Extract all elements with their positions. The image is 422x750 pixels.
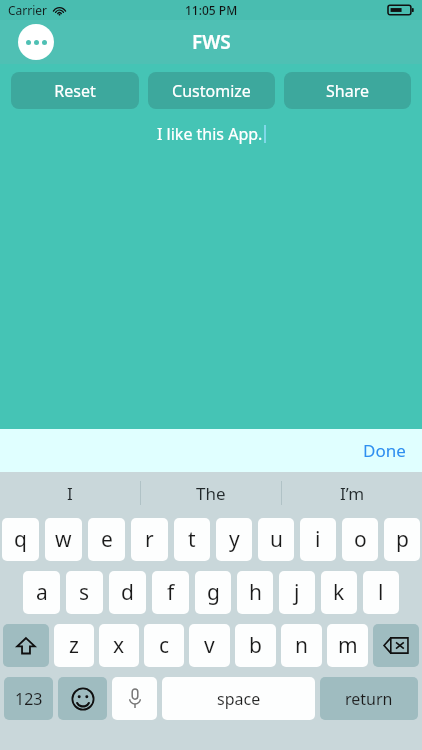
button[interactable]: Customize [148, 72, 275, 109]
staticText: e [101, 525, 113, 554]
staticText: i [315, 525, 321, 554]
button[interactable]: n [281, 624, 322, 667]
button[interactable]: d [109, 571, 146, 614]
button[interactable]: Backspace [373, 624, 419, 667]
staticText: x [113, 631, 125, 660]
button[interactable]: m [327, 624, 368, 667]
staticText: FWS [192, 29, 231, 55]
staticText: Share [326, 80, 369, 102]
button[interactable]: Reset [11, 72, 139, 109]
staticText: 123 [15, 688, 43, 710]
button[interactable]: g [195, 571, 231, 614]
staticText: r [145, 525, 154, 554]
staticText: 11:05 PM [185, 2, 238, 18]
staticText: q [14, 525, 27, 554]
staticText: z [69, 631, 79, 660]
button[interactable]: a [23, 571, 60, 614]
button[interactable]: return [320, 677, 418, 720]
staticText: Done [363, 439, 406, 462]
staticText: v [204, 631, 215, 660]
button[interactable]: Shift [3, 624, 49, 667]
staticText: Customize [172, 80, 251, 102]
staticText: u [270, 525, 283, 554]
staticText: I’m [340, 482, 365, 505]
button[interactable]: i [300, 518, 336, 561]
button[interactable]: Share [284, 72, 411, 109]
staticText: h [249, 578, 262, 607]
staticText: p [396, 525, 409, 554]
staticText: c [159, 631, 170, 660]
staticText: m [338, 631, 358, 660]
staticText: return [345, 688, 393, 710]
button[interactable]: x [99, 624, 139, 667]
button[interactable]: Dictation [112, 677, 157, 720]
button[interactable]: k [321, 571, 357, 614]
button[interactable]: f [152, 571, 189, 614]
button[interactable]: z [54, 624, 94, 667]
staticText: space [217, 688, 261, 710]
staticText: The [196, 482, 226, 505]
button[interactable]: I’m [282, 472, 422, 514]
button[interactable]: Emoji [58, 677, 107, 720]
staticText: b [249, 631, 262, 660]
staticText: o [354, 525, 367, 554]
button[interactable]: u [258, 518, 294, 561]
staticText: I like this App. [157, 123, 263, 145]
button[interactable]: s [66, 571, 103, 614]
button[interactable]: 123 [4, 677, 53, 720]
button[interactable]: More options [18, 24, 54, 60]
button[interactable]: r [131, 518, 168, 561]
button[interactable]: y [216, 518, 252, 561]
staticText: t [188, 525, 196, 554]
button[interactable]: I [0, 472, 140, 514]
staticText: Carrier [8, 2, 48, 18]
button[interactable]: q [2, 518, 39, 561]
staticText: I [67, 482, 73, 505]
staticText: j [294, 578, 300, 607]
button[interactable]: b [235, 624, 276, 667]
button[interactable]: p [384, 518, 420, 561]
staticText: g [207, 578, 220, 607]
button[interactable]: j [279, 571, 315, 614]
staticText: a [36, 578, 48, 607]
button[interactable]: c [144, 624, 184, 667]
button[interactable]: The [141, 472, 281, 514]
staticText: w [55, 525, 72, 554]
staticText: y [229, 525, 240, 554]
staticText: d [121, 578, 134, 607]
staticText: Reset [54, 80, 96, 102]
button[interactable]: w [45, 518, 82, 561]
staticText: n [295, 631, 308, 660]
staticText: l [378, 578, 384, 607]
button[interactable]: l [363, 571, 399, 614]
button[interactable]: Done [357, 435, 412, 466]
button[interactable]: space [162, 677, 315, 720]
button[interactable]: v [189, 624, 230, 667]
button[interactable]: e [88, 518, 125, 561]
button[interactable]: t [174, 518, 210, 561]
button[interactable]: h [237, 571, 273, 614]
staticText: s [79, 578, 90, 607]
button[interactable]: o [342, 518, 378, 561]
staticText: k [333, 578, 345, 607]
staticText: f [167, 578, 175, 607]
